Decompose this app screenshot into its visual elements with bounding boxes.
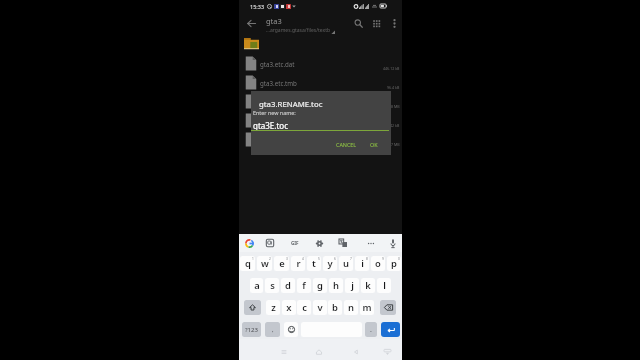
staticText: b: [332, 301, 338, 314]
button[interactable]: j: [345, 278, 359, 293]
button[interactable]: GIF: [286, 234, 304, 252]
button[interactable]: a: [250, 278, 263, 293]
button[interactable]: d: [281, 278, 295, 293]
staticText: m: [362, 301, 372, 314]
button[interactable]: Hide keyboard: [379, 344, 395, 360]
button[interactable]: c: [297, 300, 311, 315]
button[interactable]: f: [297, 278, 311, 293]
staticText: z: [271, 301, 276, 314]
button[interactable]: Emoji: [284, 322, 298, 337]
staticText: …argames.gtasa/files/textb: [266, 27, 331, 34]
button[interactable]: i: [355, 256, 369, 271]
button[interactable]: Enter: [381, 322, 400, 337]
staticText: ,: [272, 326, 274, 334]
staticText: o: [375, 257, 381, 270]
button[interactable]: More: [362, 234, 380, 252]
staticText: 15:33: [250, 3, 265, 10]
button[interactable]: Symbols: [242, 322, 261, 337]
staticText: 6: [334, 257, 336, 261]
button[interactable]: z: [266, 300, 280, 315]
staticText: p: [391, 257, 397, 270]
button[interactable]: Period: [365, 322, 377, 337]
button[interactable]: g: [313, 278, 327, 293]
staticText: 96.4 kB: [387, 85, 400, 90]
button[interactable]: CANCEL: [334, 139, 359, 150]
staticText: q: [245, 257, 251, 270]
staticText: x: [286, 301, 292, 314]
staticText: gta3E.toc: [253, 120, 289, 131]
staticText: t: [312, 257, 316, 270]
button[interactable]: OK: [368, 139, 380, 150]
button[interactable]: Change view: [368, 12, 385, 35]
staticText: e: [279, 257, 285, 270]
button[interactable]: Comma: [265, 322, 280, 337]
staticText: k: [365, 279, 371, 292]
button[interactable]: q: [240, 256, 255, 271]
button[interactable]: Google: [240, 234, 258, 252]
staticText: y: [327, 257, 333, 270]
button[interactable]: gta3.txd: [239, 130, 402, 149]
button[interactable]: w: [257, 256, 272, 271]
staticText: g: [317, 279, 323, 292]
button[interactable]: Backspace: [380, 300, 396, 315]
staticText: gta3.RENAME.toc: [260, 98, 311, 106]
button[interactable]: r: [291, 256, 305, 271]
staticText: 3.17 MB: [386, 142, 400, 147]
button[interactable]: h: [329, 278, 343, 293]
staticText: s: [270, 279, 275, 292]
button[interactable]: Stickers: [261, 234, 279, 252]
staticText: a: [254, 279, 260, 292]
staticText: CANCEL: [336, 141, 357, 148]
button[interactable]: Back: [348, 344, 364, 360]
staticText: u: [343, 257, 349, 270]
staticText: 2: [269, 257, 271, 261]
staticText: OK: [370, 141, 378, 148]
staticText: d: [285, 279, 291, 292]
staticText: gta3.RENAME.toc: [259, 99, 323, 110]
button[interactable]: Translate: [334, 234, 352, 252]
staticText: gta3.etc.dat: [260, 60, 295, 68]
button[interactable]: p: [387, 256, 401, 271]
staticText: 8: [366, 257, 368, 261]
button[interactable]: gta3.etc.tmb: [239, 73, 402, 92]
staticText: r: [296, 257, 301, 270]
staticText: gta3.etc.tmb: [260, 79, 297, 87]
button[interactable]: k: [361, 278, 375, 293]
button[interactable]: gta3.toc: [239, 111, 402, 130]
button[interactable]: More options: [388, 12, 400, 35]
staticText: ?123: [245, 326, 258, 334]
button[interactable]: Search: [350, 12, 367, 35]
button[interactable]: Back: [242, 12, 260, 35]
button[interactable]: Voice input: [384, 234, 402, 252]
button[interactable]: t: [307, 256, 321, 271]
button[interactable]: v: [313, 300, 327, 315]
button[interactable]: b: [328, 300, 342, 315]
button[interactable]: Shift: [244, 300, 261, 315]
button[interactable]: gta3.etc.dat: [239, 54, 402, 73]
button[interactable]: y: [323, 256, 337, 271]
staticText: GIF: [291, 240, 299, 246]
button[interactable]: x: [282, 300, 296, 315]
staticText: 1.28 MB: [386, 104, 400, 109]
staticText: l: [383, 279, 386, 292]
button[interactable]: Home: [311, 344, 327, 360]
button[interactable]: [239, 34, 402, 52]
staticText: gta3: [266, 16, 282, 26]
staticText: 9: [382, 257, 384, 261]
staticText: gta3.toc: [260, 117, 284, 125]
button[interactable]: u: [339, 256, 353, 271]
button[interactable]: s: [265, 278, 279, 293]
button[interactable]: l: [377, 278, 391, 293]
staticText: 3: [286, 257, 288, 261]
button[interactable]: e: [274, 256, 289, 271]
button[interactable]: o: [371, 256, 385, 271]
button[interactable]: gta3.RENAME.toc: [239, 92, 402, 111]
button[interactable]: m: [360, 300, 374, 315]
staticText: Enter new name:: [253, 109, 296, 116]
staticText: f: [302, 279, 306, 292]
button[interactable]: Recents: [276, 344, 292, 360]
button[interactable]: Settings: [310, 234, 328, 252]
button[interactable]: n: [344, 300, 358, 315]
